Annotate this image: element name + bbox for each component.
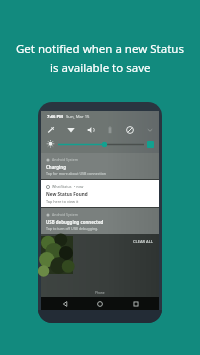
staticText: Android System — [52, 157, 78, 162]
button[interactable]: Android System — [41, 153, 159, 179]
staticText: WhatStatus — [52, 184, 72, 189]
button[interactable]: Android System — [41, 208, 159, 234]
button[interactable]: Expand — [144, 124, 155, 135]
staticText: is available to save — [50, 60, 151, 76]
button[interactable]: Brightness slider — [58, 140, 144, 149]
staticText: New Status Found — [46, 191, 88, 197]
staticText: • now — [74, 184, 84, 189]
staticText: Tap to turn off USB debugging. — [46, 226, 99, 231]
staticText: Phone — [95, 291, 105, 295]
staticText: CLEAR ALL — [133, 239, 153, 244]
button[interactable]: WhatStatus — [41, 180, 159, 207]
staticText: USB debugging connected — [46, 219, 104, 225]
button[interactable]: Home — [88, 297, 112, 310]
button[interactable]: Auto — [147, 141, 154, 148]
button[interactable]: Edit — [45, 124, 56, 135]
button[interactable]: Auto brightness — [46, 140, 55, 149]
staticText: Sun, Mar 15 — [66, 114, 90, 120]
button[interactable]: Recents — [124, 297, 148, 310]
staticText: Tap here to view it — [46, 199, 79, 204]
button[interactable]: Battery — [104, 124, 115, 135]
staticText: 7:46 PM — [47, 114, 64, 120]
staticText: Tap for more about USB connection — [46, 171, 107, 176]
staticText: Charging — [46, 164, 66, 170]
button[interactable]: Sound — [85, 124, 96, 135]
button[interactable]: CLEAR ALL — [127, 237, 159, 246]
staticText: Android System — [52, 212, 78, 217]
button[interactable]: Back — [53, 297, 77, 310]
button[interactable]: Do not disturb — [124, 124, 135, 135]
staticText: Get notified when a new Status — [16, 41, 184, 57]
button[interactable]: Wi-Fi — [65, 124, 76, 135]
